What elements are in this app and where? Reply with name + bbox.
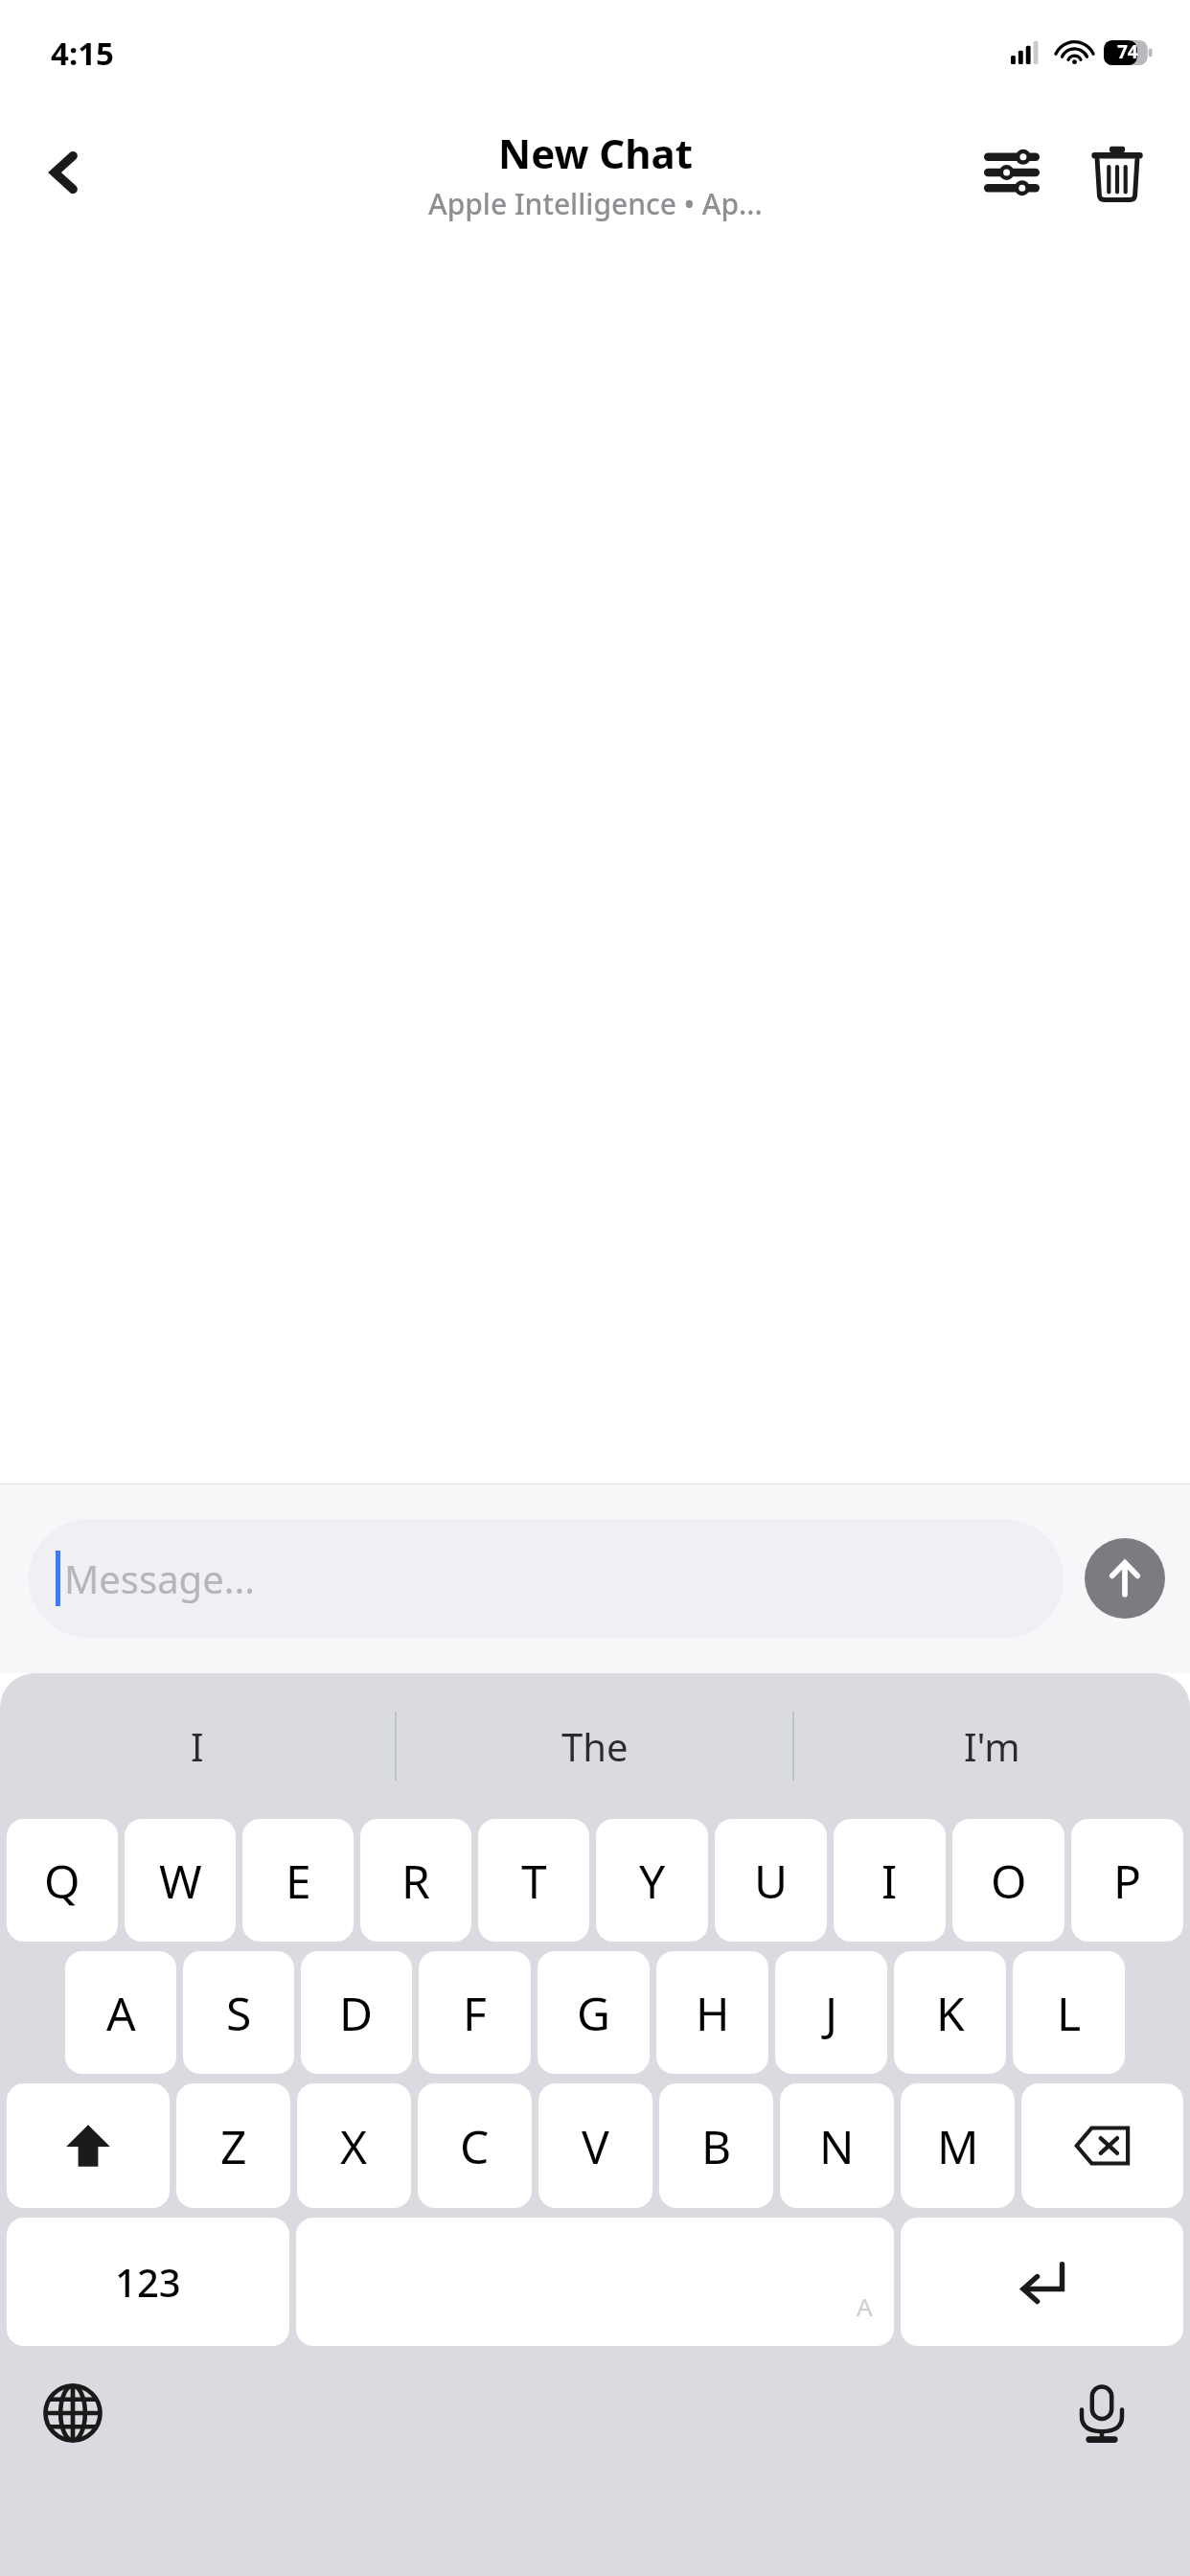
staticText: G	[577, 1982, 610, 2044]
button[interactable]: 123	[7, 2218, 289, 2346]
button[interactable]: V	[538, 2083, 652, 2208]
staticText: H	[696, 1982, 730, 2044]
staticText: I'm	[964, 1720, 1020, 1772]
staticText: U	[754, 1850, 789, 1912]
button[interactable]: C	[418, 2083, 532, 2208]
button[interactable]: X	[297, 2083, 411, 2208]
button[interactable]: Message...	[29, 1519, 1064, 1638]
staticText: L	[1057, 1982, 1082, 2044]
button[interactable]: Delete	[1064, 126, 1171, 218]
button[interactable]: Back	[19, 126, 111, 218]
staticText: A	[106, 1982, 136, 2044]
button[interactable]: J	[775, 1951, 887, 2074]
button[interactable]: O	[952, 1819, 1064, 1942]
button[interactable]: M	[901, 2083, 1015, 2208]
button[interactable]: E	[242, 1819, 354, 1942]
staticText: I	[191, 1720, 204, 1772]
button[interactable]: I	[0, 1673, 395, 1819]
staticText: E	[286, 1850, 311, 1912]
staticText: Y	[639, 1850, 666, 1912]
staticText: A	[857, 2289, 873, 2323]
staticText: New Chat	[498, 126, 693, 180]
button[interactable]: W	[125, 1819, 236, 1942]
staticText: F	[463, 1982, 487, 2044]
button[interactable]: I	[834, 1819, 946, 1942]
button[interactable]: D	[301, 1951, 412, 2074]
staticText: Apple Intelligence • Ap...	[428, 184, 763, 223]
staticText: C	[460, 2115, 490, 2177]
staticText: O	[991, 1850, 1027, 1912]
staticText: D	[339, 1982, 374, 2044]
staticText: 74	[1117, 39, 1138, 64]
staticText: S	[226, 1982, 252, 2044]
staticText: R	[401, 1850, 430, 1912]
staticText: P	[1113, 1850, 1142, 1912]
button[interactable]: T	[478, 1819, 589, 1942]
staticText: Z	[220, 2115, 247, 2177]
staticText: 123	[115, 2256, 181, 2308]
button[interactable]: Change keyboard	[29, 2369, 117, 2457]
staticText: 4:15	[51, 32, 114, 75]
staticText: B	[701, 2115, 732, 2177]
button[interactable]: B	[659, 2083, 773, 2208]
staticText: The	[561, 1720, 629, 1772]
staticText: K	[936, 1982, 965, 2044]
staticText: T	[521, 1850, 547, 1912]
button[interactable]: Send	[1085, 1538, 1165, 1619]
button[interactable]: U	[715, 1819, 827, 1942]
staticText: I	[881, 1850, 898, 1912]
button[interactable]: I'm	[794, 1673, 1190, 1819]
button[interactable]: P	[1071, 1819, 1183, 1942]
button[interactable]: Shift	[7, 2083, 170, 2208]
button[interactable]: Dictate	[1058, 2369, 1146, 2457]
staticText: N	[819, 2115, 855, 2177]
staticText: Message...	[64, 1552, 255, 1604]
button[interactable]: The	[397, 1673, 792, 1819]
staticText: W	[159, 1850, 202, 1912]
staticText: J	[825, 1982, 838, 2044]
button[interactable]: R	[360, 1819, 471, 1942]
staticText: M	[937, 2115, 979, 2177]
button[interactable]: H	[656, 1951, 768, 2074]
button[interactable]: G	[538, 1951, 650, 2074]
staticText: Q	[44, 1850, 80, 1912]
staticText: X	[340, 2115, 368, 2177]
button[interactable]: Return	[901, 2218, 1183, 2346]
button[interactable]: Space	[296, 2218, 894, 2346]
button[interactable]: Backspace	[1021, 2083, 1183, 2208]
button[interactable]: Y	[596, 1819, 708, 1942]
button[interactable]: Q	[7, 1819, 118, 1942]
button[interactable]: F	[419, 1951, 531, 2074]
button[interactable]: A	[65, 1951, 176, 2074]
button[interactable]: Settings	[960, 126, 1064, 218]
button[interactable]: N	[780, 2083, 894, 2208]
button[interactable]: Z	[176, 2083, 290, 2208]
button[interactable]: K	[894, 1951, 1006, 2074]
button[interactable]: S	[183, 1951, 294, 2074]
button[interactable]: L	[1013, 1951, 1125, 2074]
staticText: V	[582, 2115, 609, 2177]
